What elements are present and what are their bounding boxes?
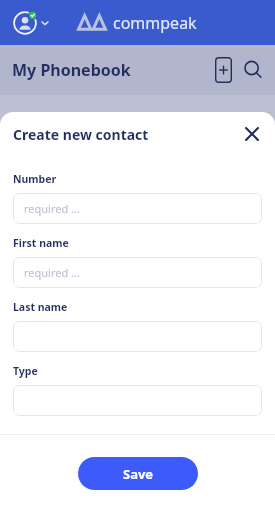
button[interactable]: Add contact: [215, 57, 232, 83]
staticText: required ...: [24, 265, 80, 280]
button[interactable]: Account: [10, 8, 51, 38]
staticText: Create new contact: [13, 125, 149, 144]
staticText: First name: [13, 236, 69, 250]
button[interactable]: [13, 321, 262, 352]
staticText: required ...: [24, 201, 80, 216]
staticText: Number: [13, 172, 57, 186]
button[interactable]: required ...: [13, 193, 262, 224]
button[interactable]: Save: [78, 457, 198, 490]
staticText: commpeak: [113, 12, 197, 34]
button[interactable]: Search: [241, 58, 265, 82]
staticText: Type: [13, 364, 38, 378]
button[interactable]: required ...: [13, 257, 262, 288]
staticText: My Phonebook: [12, 59, 131, 81]
button[interactable]: Close: [239, 121, 265, 147]
button[interactable]: [13, 385, 262, 416]
staticText: Save: [123, 465, 154, 483]
staticText: Last name: [13, 300, 68, 314]
